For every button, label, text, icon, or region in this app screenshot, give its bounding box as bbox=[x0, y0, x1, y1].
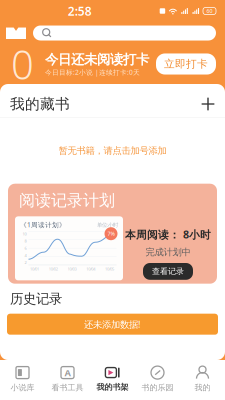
staticText: 我的书架 bbox=[96, 382, 128, 392]
staticText: 书的乐园 bbox=[141, 383, 173, 392]
staticText: 《1周读计划》 bbox=[20, 220, 66, 229]
button[interactable]: 立即打卡 bbox=[156, 53, 216, 74]
staticText: 6 bbox=[24, 245, 26, 251]
staticText: 10/03 bbox=[67, 266, 76, 271]
staticText: 历史记录 bbox=[10, 290, 62, 307]
button[interactable]: 我的 bbox=[180, 358, 225, 400]
staticText: 2:58 bbox=[68, 3, 92, 19]
staticText: 我的 bbox=[194, 383, 210, 392]
button[interactable]: 查看记录 bbox=[143, 263, 193, 280]
staticText: 小说库 bbox=[10, 383, 34, 392]
staticText: 立即打卡 bbox=[164, 57, 208, 70]
staticText: 单位:小时 bbox=[97, 221, 118, 228]
staticText: 查看记录 bbox=[152, 266, 184, 276]
staticText: 10/05 bbox=[105, 266, 114, 271]
button[interactable]: 还未添加数据! bbox=[7, 314, 218, 335]
staticText: 2 bbox=[24, 260, 26, 265]
staticText: 10 bbox=[22, 231, 26, 236]
staticText: 10/02 bbox=[49, 266, 58, 271]
staticText: 还未添加数据! bbox=[84, 318, 141, 330]
staticText: 本周阅读： 8小时 bbox=[125, 227, 211, 242]
staticText: 7% bbox=[107, 230, 114, 237]
staticText: 10/01 bbox=[30, 266, 39, 271]
staticText: 60 bbox=[206, 7, 212, 15]
staticText: 4 bbox=[24, 253, 26, 258]
staticText: A bbox=[64, 366, 70, 379]
staticText: 0 bbox=[11, 37, 34, 90]
staticText: 今日目标:2小说 |连续打卡:0天 bbox=[45, 68, 140, 77]
staticText: 8 bbox=[24, 238, 26, 244]
staticText: 今日还未阅读打卡 bbox=[45, 51, 149, 68]
button[interactable]: Search bbox=[33, 25, 216, 40]
button[interactable]: 我的书架 bbox=[90, 358, 135, 400]
button[interactable]: Add book bbox=[201, 97, 215, 111]
button[interactable]: Library bbox=[0, 25, 26, 40]
button[interactable]: 书的乐园 bbox=[135, 358, 180, 400]
staticText: 完成计划中 bbox=[145, 246, 190, 258]
staticText: 我的藏书 bbox=[10, 95, 70, 113]
button[interactable]: 小说库 bbox=[0, 358, 45, 400]
staticText: 看书工具 bbox=[51, 383, 83, 392]
button[interactable]: A bbox=[45, 358, 90, 400]
staticText: 阅读记录计划 bbox=[19, 191, 115, 210]
staticText: 暂无书籍，请点击加号添加 bbox=[58, 145, 166, 156]
staticText: 10/04 bbox=[86, 266, 95, 271]
